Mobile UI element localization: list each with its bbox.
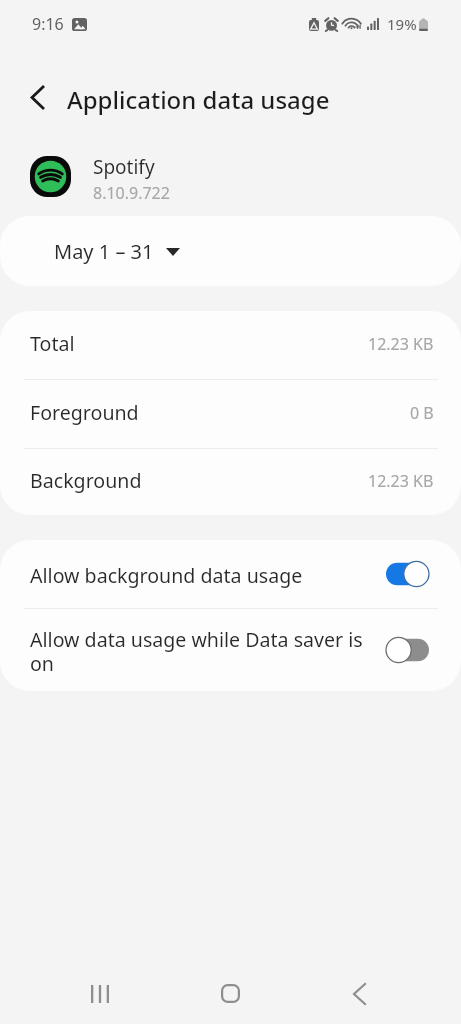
staticText: May 1 – 31: [54, 238, 154, 265]
button[interactable]: Back: [327, 963, 391, 1024]
staticText: 0 B: [410, 402, 434, 424]
button[interactable]: Total: [0, 311, 461, 379]
button[interactable]: Background: [0, 449, 461, 515]
button[interactable]: May 1 – 31: [0, 216, 461, 286]
staticText: Foreground: [30, 399, 139, 426]
staticText: Application data usage: [67, 83, 330, 116]
staticText: 12.23 KB: [368, 333, 434, 355]
button[interactable]: Navigate up: [15, 75, 59, 119]
staticText: 8.10.9.722: [93, 182, 170, 204]
button[interactable]: Home: [198, 963, 262, 1024]
button[interactable]: Recents: [68, 963, 132, 1024]
staticText: 9:16: [32, 13, 64, 35]
button[interactable]: Allow data usage while Data saver is on: [0, 609, 461, 691]
button[interactable]: Allow background data usage: [0, 540, 461, 608]
staticText: Total: [30, 330, 75, 357]
staticText: 12.23 KB: [368, 470, 434, 492]
staticText: 19%: [387, 14, 417, 34]
staticText: Background: [30, 467, 142, 494]
staticText: Spotify: [93, 154, 155, 180]
staticText: Allow background data usage: [30, 562, 372, 589]
staticText: Allow data usage while Data saver is on: [30, 626, 372, 677]
button[interactable]: Foreground: [0, 380, 461, 448]
